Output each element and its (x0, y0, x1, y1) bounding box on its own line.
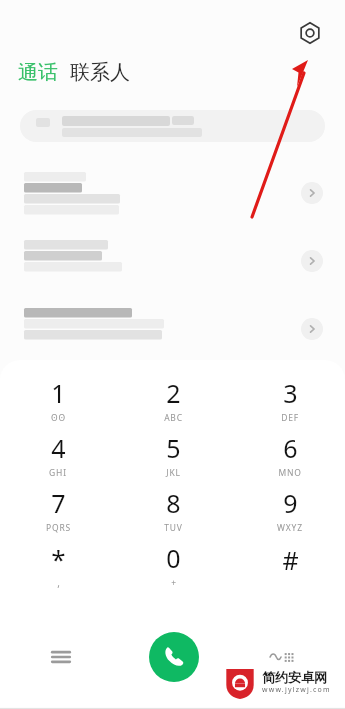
staticText: 5 (166, 431, 181, 465)
button[interactable]: 6 (245, 428, 335, 482)
staticText: 2 (166, 376, 181, 410)
button[interactable]: Settings (295, 18, 325, 48)
staticText: 联系人 (70, 60, 130, 85)
staticText: + (171, 577, 177, 589)
button[interactable]: Details (0, 166, 345, 226)
staticText: JKL (166, 467, 181, 479)
staticText: 7 (51, 486, 66, 520)
staticText: www.jylzwj.com (262, 685, 331, 695)
staticText: WXYZ (277, 522, 303, 534)
button[interactable]: Search (20, 110, 325, 142)
staticText: MNO (278, 467, 302, 479)
button[interactable]: Details (0, 302, 345, 362)
staticText: 4 (51, 431, 66, 465)
button[interactable]: Details (301, 318, 323, 340)
button[interactable]: 联系人 (70, 60, 130, 85)
staticText: 简约安卓网 (262, 669, 327, 685)
staticText: GHI (49, 467, 67, 479)
staticText: PQRS (46, 522, 71, 534)
button[interactable]: # (245, 538, 335, 592)
button[interactable]: 7 (13, 483, 103, 537)
staticText: 3 (283, 376, 298, 410)
button[interactable]: 1 (13, 373, 103, 427)
button[interactable]: 通话 (18, 60, 58, 85)
button[interactable]: 3 (245, 373, 335, 427)
button[interactable]: Call (149, 632, 199, 682)
button[interactable]: 4 (13, 428, 103, 482)
staticText: 1 (51, 376, 66, 410)
button[interactable]: Details (301, 182, 323, 204)
staticText: * (51, 541, 66, 576)
staticText: TUV (164, 522, 183, 534)
button[interactable]: 2 (128, 373, 218, 427)
button[interactable]: 9 (245, 483, 335, 537)
button[interactable]: Menu (41, 637, 81, 677)
staticText: , (57, 576, 61, 590)
button[interactable]: 8 (128, 483, 218, 537)
staticText: # (282, 543, 299, 577)
staticText: DEF (281, 412, 299, 424)
staticText: 9 (283, 486, 298, 520)
button[interactable]: Details (0, 234, 345, 294)
button[interactable]: Details (301, 250, 323, 272)
staticText: 6 (283, 431, 298, 465)
button[interactable]: Hide keypad (263, 637, 303, 677)
button[interactable]: * (13, 538, 103, 592)
button[interactable]: 5 (128, 428, 218, 482)
staticText: ABC (164, 412, 183, 424)
staticText: 8 (166, 486, 181, 520)
staticText: ʘʘ (51, 412, 66, 424)
staticText: 0 (166, 541, 181, 575)
button[interactable]: 0 (128, 538, 218, 592)
staticText: 通话 (18, 60, 58, 85)
